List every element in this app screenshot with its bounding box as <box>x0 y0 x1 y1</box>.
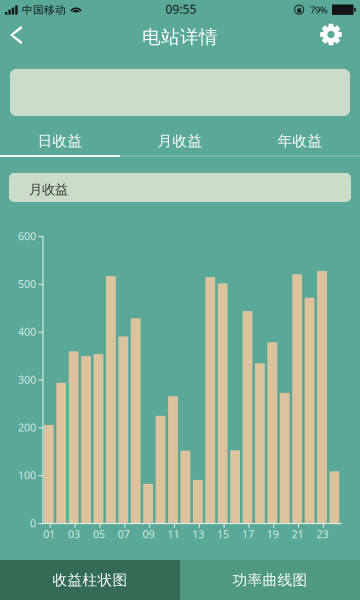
button[interactable]: 收益柱状图 <box>0 560 180 600</box>
staticText: 500 <box>18 277 36 291</box>
staticText: 月收益 <box>29 181 68 198</box>
staticText: 年收益 <box>277 132 322 150</box>
button[interactable]: 年收益 <box>240 131 360 155</box>
button[interactable]: 日收益 <box>0 131 120 155</box>
staticText: 09 <box>142 527 154 541</box>
button[interactable]: 设置 <box>320 20 360 60</box>
staticText: 日收益 <box>37 132 82 150</box>
staticText: 200 <box>18 420 36 434</box>
staticText: 100 <box>18 468 36 482</box>
staticText: 电站详情 <box>142 25 218 48</box>
staticText: 0 <box>30 516 36 530</box>
staticText: 19 <box>267 527 279 541</box>
staticText: 07 <box>118 527 130 541</box>
button[interactable]: 月收益 <box>120 131 240 155</box>
button[interactable]: 返回 <box>0 20 36 60</box>
staticText: 13 <box>192 527 204 541</box>
staticText: 11 <box>167 527 179 541</box>
staticText: 中国移动 <box>22 3 66 16</box>
staticText: 400 <box>18 325 36 339</box>
staticText: 03 <box>68 527 80 541</box>
staticText: 月收益 <box>157 132 202 150</box>
staticText: 300 <box>18 372 36 387</box>
staticText: 600 <box>18 229 36 243</box>
button[interactable]: 功率曲线图 <box>180 560 360 600</box>
staticText: 79% <box>310 4 328 16</box>
staticText: 15 <box>217 527 229 541</box>
staticText: 21 <box>291 527 303 541</box>
staticText: 01 <box>43 527 55 541</box>
staticText: 05 <box>93 527 105 541</box>
staticText: 09:55 <box>165 1 196 17</box>
staticText: 17 <box>242 527 254 541</box>
staticText: 收益柱状图 <box>52 571 127 589</box>
staticText: 功率曲线图 <box>232 571 307 589</box>
staticText: 23 <box>316 527 328 541</box>
